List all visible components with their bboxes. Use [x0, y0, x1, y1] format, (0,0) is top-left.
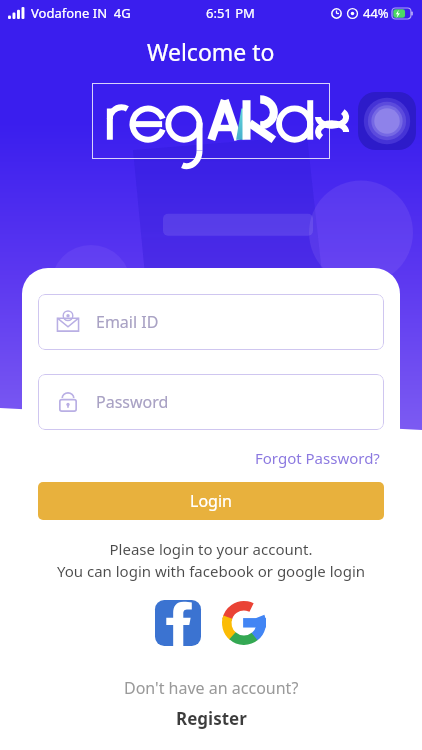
button[interactable]: Login [38, 482, 384, 520]
staticText: Email ID [96, 311, 159, 333]
staticText: You can login with facebook or google lo… [38, 561, 384, 581]
button[interactable]: Register [168, 705, 255, 732]
button[interactable]: Login with Facebook [152, 597, 204, 649]
staticText: Register [176, 707, 247, 730]
button[interactable]: Password [38, 374, 384, 430]
staticText: 44% [363, 4, 389, 22]
staticText: 6:51 PM [206, 4, 255, 22]
staticText: Vodafone IN 4G [31, 4, 131, 22]
staticText: Forgot Password? [255, 448, 380, 468]
staticText: Password [96, 391, 169, 413]
staticText: Please login to your account. [38, 539, 384, 559]
staticText: Welcome to [147, 36, 275, 67]
staticText: Don't have an account? [124, 677, 299, 699]
staticText: Login [190, 490, 232, 512]
button[interactable]: Email ID [38, 294, 384, 350]
button[interactable]: Forgot Password? [251, 444, 384, 472]
button[interactable]: Login with Google [218, 597, 270, 649]
